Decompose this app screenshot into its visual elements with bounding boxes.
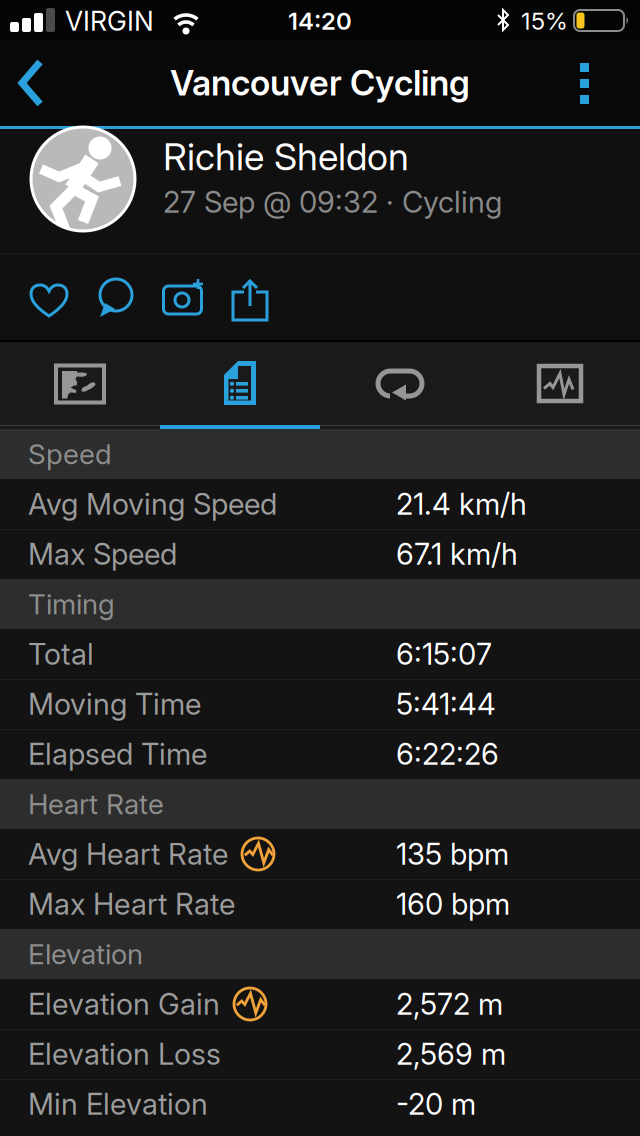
staticText: Elevation Gain	[28, 987, 220, 1021]
staticText: 67.1 km/h	[396, 537, 518, 571]
staticText: Max Heart Rate	[28, 887, 235, 921]
staticText: Timing	[28, 587, 115, 620]
staticText: -20 m	[396, 1087, 476, 1121]
button[interactable]: Share	[228, 278, 272, 322]
button[interactable]: Back	[12, 56, 56, 110]
staticText: Speed	[28, 437, 112, 470]
button[interactable]: Map	[0, 342, 160, 425]
button[interactable]: Stats	[160, 342, 320, 425]
staticText: 27 Sep @ 09:32 · Cycling	[163, 185, 502, 219]
staticText: Avg Moving Speed	[28, 487, 277, 521]
staticText: 2,569 m	[396, 1037, 506, 1071]
staticText: Max Speed	[28, 537, 177, 571]
staticText: Elevation	[28, 937, 143, 970]
button[interactable]: Charts	[480, 342, 640, 425]
button[interactable]: More options	[572, 56, 628, 110]
staticText: Avg Heart Rate	[28, 837, 228, 871]
staticText: 135 bpm	[396, 837, 509, 871]
staticText: 5:41:44	[396, 687, 496, 721]
staticText: 2,572 m	[396, 987, 503, 1021]
staticText: Elevation Loss	[28, 1037, 221, 1071]
button[interactable]: Comment	[94, 278, 138, 322]
staticText: Moving Time	[28, 687, 201, 721]
button[interactable]: Laps	[320, 342, 480, 425]
staticText: 14:20	[288, 7, 352, 35]
staticText: Heart Rate	[28, 787, 164, 820]
staticText: 15%	[521, 7, 568, 35]
staticText: 6:15:07	[396, 637, 492, 671]
staticText: Elapsed Time	[28, 737, 207, 771]
staticText: 160 bpm	[396, 887, 510, 921]
staticText: Total	[28, 637, 94, 671]
staticText: Vancouver Cycling	[170, 63, 470, 103]
staticText: 21.4 km/h	[396, 487, 527, 521]
staticText: VIRGIN	[65, 5, 154, 37]
staticText: Richie Sheldon	[163, 135, 409, 179]
staticText: Min Elevation	[28, 1087, 208, 1121]
button[interactable]: Add photo	[161, 278, 205, 322]
staticText: 6:22:26	[396, 737, 499, 771]
button[interactable]: Like	[27, 278, 71, 322]
